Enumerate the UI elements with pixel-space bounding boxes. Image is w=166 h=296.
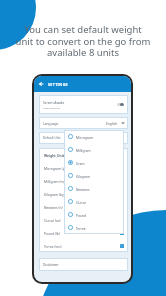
staticText: Keep Screen On xyxy=(43,107,61,110)
staticText: Weight_Unit xyxy=(44,153,65,157)
button[interactable]: Tonne (ton) xyxy=(39,239,128,252)
button[interactable]: Ounce (oz) xyxy=(39,213,128,226)
button[interactable]: Milligram xyxy=(64,143,124,156)
staticText: Microgram xyxy=(76,135,93,139)
button[interactable]: Language xyxy=(39,117,128,129)
staticText: Tonne xyxy=(76,226,86,230)
staticText: Language xyxy=(43,121,59,125)
button[interactable]: Kilogram xyxy=(64,169,124,182)
button[interactable]: Milligram (mg) xyxy=(39,174,128,187)
staticText: Milligram xyxy=(76,148,91,152)
button[interactable]: Ounce xyxy=(64,195,124,208)
button[interactable]: Pound (lb) xyxy=(39,226,128,239)
button[interactable]: Pound xyxy=(64,208,124,221)
other: Back xyxy=(38,81,44,87)
button[interactable]: Weight_Unit xyxy=(39,148,128,161)
button[interactable]: Default Unit xyxy=(39,132,128,144)
staticText: Ounce (oz) xyxy=(44,218,61,222)
staticText: You can set default weight unit to conve… xyxy=(0,23,166,58)
staticText: SETTINGS xyxy=(48,82,68,87)
staticText: Newtons xyxy=(76,187,90,191)
staticText: English xyxy=(106,121,118,125)
staticText: Kilogram (kg) xyxy=(44,192,65,196)
button[interactable]: Newtons (n) xyxy=(39,200,128,213)
button[interactable]: Microgram xyxy=(64,130,124,143)
staticText: Microgram (µg) xyxy=(44,166,68,170)
staticText: Gram xyxy=(76,161,85,165)
button[interactable]: Tonne xyxy=(64,221,124,234)
staticText: Pound (lb) xyxy=(44,231,60,235)
staticText: Disclaimer xyxy=(43,263,59,267)
staticText: Screen Awake xyxy=(43,100,65,104)
staticText: Kilogram xyxy=(76,174,90,178)
staticText: Tonne (ton) xyxy=(44,244,62,248)
staticText: Default Unit xyxy=(43,136,61,140)
button[interactable]: Screen Awake xyxy=(39,95,128,114)
button[interactable]: Kilogram (kg) xyxy=(39,187,128,200)
staticText: Newtons (n) xyxy=(44,205,63,209)
button[interactable]: Back xyxy=(34,76,131,92)
button[interactable]: Gram xyxy=(64,156,124,169)
staticText: Ounce xyxy=(76,200,87,204)
button[interactable]: Screen awake toggle xyxy=(117,103,124,106)
button[interactable]: Newtons xyxy=(64,182,124,195)
button[interactable]: Disclaimer xyxy=(39,258,128,271)
staticText: Milligram (mg) xyxy=(44,179,67,183)
button[interactable]: Microgram (µg) xyxy=(39,161,128,174)
staticText: Pound xyxy=(76,213,87,217)
